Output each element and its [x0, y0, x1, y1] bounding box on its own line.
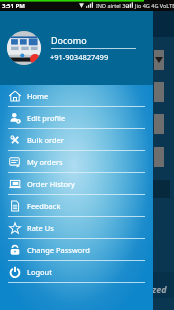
staticText: Bulk order [27, 135, 64, 145]
staticText: Order History [27, 179, 75, 189]
staticText: Home [27, 91, 49, 101]
staticText: Logout [27, 267, 52, 277]
staticText: My orders [27, 157, 63, 167]
staticText: Jio 4G 4G VoLTE [135, 2, 174, 9]
button[interactable]: Feedback [0, 195, 153, 217]
staticText: 3:51 PM [2, 2, 25, 10]
staticText: Edit profile [27, 113, 66, 123]
staticText: zed [152, 283, 167, 295]
staticText: Docomo [51, 34, 87, 46]
staticText: +91-9034827499 [50, 52, 109, 62]
button[interactable]: Logout [0, 261, 153, 283]
staticText: Feedback [27, 201, 61, 211]
staticText: Rate Us [27, 223, 54, 233]
button[interactable]: Rate Us [0, 217, 153, 239]
button[interactable]: Change Password [0, 239, 153, 261]
staticText: IND airtel 3G [96, 2, 130, 9]
button[interactable]: My orders [0, 151, 153, 173]
button[interactable]: Bulk order [0, 129, 153, 151]
staticText: Change Password [27, 245, 90, 255]
button[interactable]: Order History [0, 173, 153, 195]
button[interactable]: Edit profile [0, 107, 153, 129]
button[interactable]: Home [0, 85, 153, 107]
